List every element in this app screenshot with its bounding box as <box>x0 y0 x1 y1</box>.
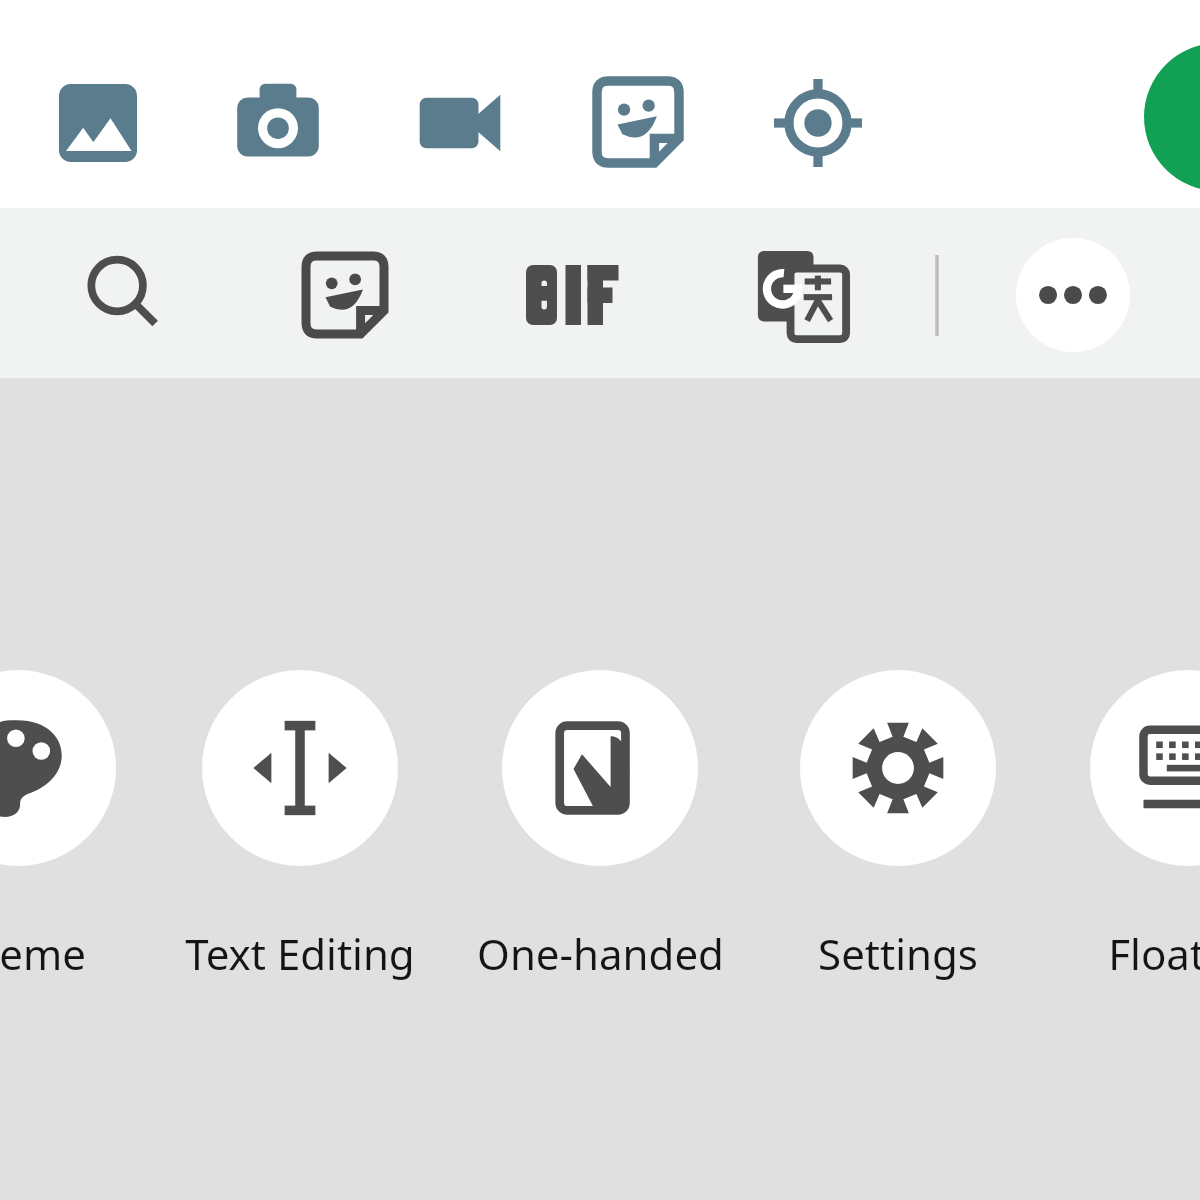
button[interactable]: Video <box>410 73 510 173</box>
button[interactable]: Location <box>768 73 868 173</box>
button[interactable]: Floating <box>1048 660 1200 1000</box>
staticText: Text Editing <box>185 925 415 982</box>
button[interactable]: Text Editing <box>160 660 440 1000</box>
staticText: One-handed <box>477 925 724 982</box>
button[interactable]: Send <box>1144 43 1200 191</box>
button[interactable]: Stickers <box>295 245 395 345</box>
button[interactable]: Settings <box>758 660 1038 1000</box>
button[interactable]: Gallery <box>48 73 148 173</box>
button[interactable]: GIF <box>522 245 622 345</box>
staticText: Theme <box>0 925 86 982</box>
button[interactable]: Translate <box>752 245 852 345</box>
button[interactable]: Search <box>74 245 174 345</box>
button[interactable]: One-handed <box>460 660 740 1000</box>
button[interactable]: Camera <box>228 73 328 173</box>
button[interactable]: Sticker <box>588 72 688 172</box>
staticText: Settings <box>818 925 978 982</box>
button[interactable]: More options <box>1016 238 1130 352</box>
button[interactable]: Theme <box>0 660 158 1000</box>
staticText: Floating <box>1108 925 1200 982</box>
